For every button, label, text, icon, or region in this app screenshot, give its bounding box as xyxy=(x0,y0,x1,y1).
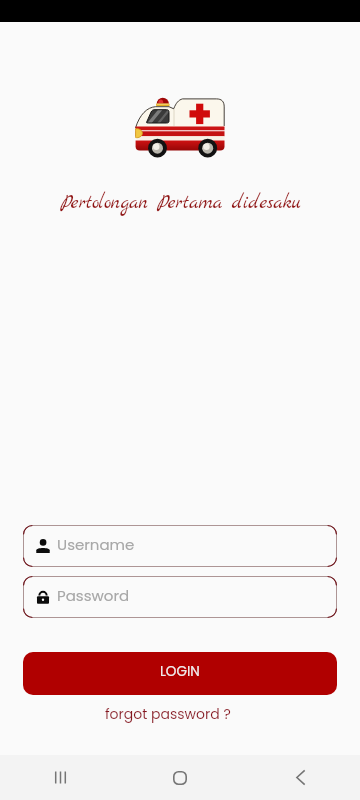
staticText: Password xyxy=(57,585,130,606)
button[interactable]: forgot password ? xyxy=(99,702,237,726)
button[interactable]: Back xyxy=(240,755,360,800)
button[interactable]: Home xyxy=(120,755,240,800)
button[interactable]: LOGIN xyxy=(23,652,337,695)
button[interactable]: Username xyxy=(23,525,337,567)
staticText: Username xyxy=(57,534,135,555)
staticText: Pertolongan Pertama didesaku xyxy=(60,191,301,216)
staticText: forgot password ? xyxy=(105,704,231,724)
button[interactable]: Password xyxy=(23,576,337,618)
button[interactable]: Recent apps xyxy=(0,755,120,800)
staticText: LOGIN xyxy=(160,662,200,681)
